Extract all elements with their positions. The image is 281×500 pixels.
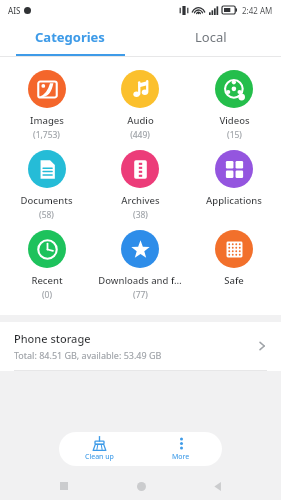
staticText: (449) xyxy=(130,129,150,141)
staticText: Applications xyxy=(206,194,262,207)
staticText: Documents xyxy=(20,194,73,207)
staticText: (15) xyxy=(227,129,242,141)
staticText: (38) xyxy=(133,209,148,221)
button[interactable]: Local xyxy=(140,20,281,54)
button[interactable]: Applications xyxy=(187,144,281,224)
button[interactable]: Home xyxy=(128,473,154,499)
other: Open phone storage xyxy=(255,339,269,353)
staticText: Audio xyxy=(127,114,154,127)
staticText: AIS xyxy=(8,5,21,16)
staticText: 2:42 AM xyxy=(242,5,273,16)
staticText: (0) xyxy=(42,289,52,301)
staticText: Downloads and f… xyxy=(98,274,182,287)
button[interactable]: Categories xyxy=(0,20,140,54)
button[interactable]: Videos xyxy=(187,64,281,144)
button[interactable]: Phone storage xyxy=(0,322,281,370)
staticText: Archives xyxy=(121,194,160,207)
staticText: Clean up xyxy=(85,452,114,462)
staticText: (1,753) xyxy=(33,129,60,141)
button[interactable]: Archives xyxy=(93,144,187,224)
button[interactable]: Documents xyxy=(0,144,93,224)
button[interactable]: More xyxy=(140,432,222,466)
staticText: Safe xyxy=(224,274,244,287)
staticText: Phone storage xyxy=(14,331,91,346)
button[interactable]: Recent apps xyxy=(51,473,77,499)
button[interactable]: Downloads and f… xyxy=(93,224,187,304)
button[interactable]: Clean up xyxy=(59,432,140,466)
button[interactable]: Audio xyxy=(93,64,187,144)
staticText: Videos xyxy=(219,114,250,127)
staticText: More xyxy=(172,452,190,462)
staticText: (58) xyxy=(39,209,54,221)
button[interactable]: Images xyxy=(0,64,93,144)
button[interactable]: Safe xyxy=(187,224,281,304)
staticText: Images xyxy=(30,114,64,127)
button[interactable]: Back xyxy=(204,473,230,499)
staticText: Categories xyxy=(35,28,105,46)
staticText: Recent xyxy=(31,274,63,287)
staticText: (77) xyxy=(133,289,148,301)
staticText: Total: 84.51 GB, available: 53.49 GB xyxy=(14,349,162,361)
button[interactable]: Recent xyxy=(0,224,93,304)
staticText: Local xyxy=(195,28,227,46)
